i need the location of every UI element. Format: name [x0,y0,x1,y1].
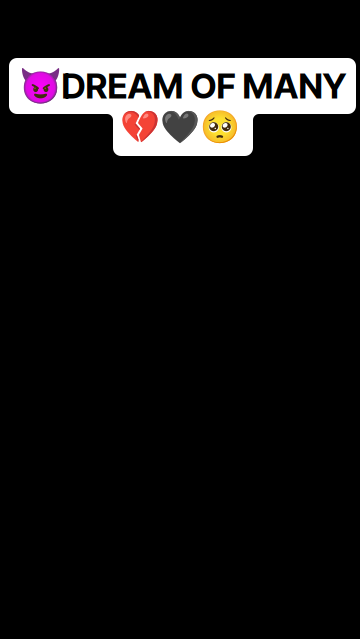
staticText: 💔🖤🥺 [120,109,240,145]
button[interactable]: DREAM OF MANY 💔🖤🥺 [9,58,356,156]
staticText: 😈 [18,66,61,106]
staticText: DREAM OF MANY [61,65,346,107]
